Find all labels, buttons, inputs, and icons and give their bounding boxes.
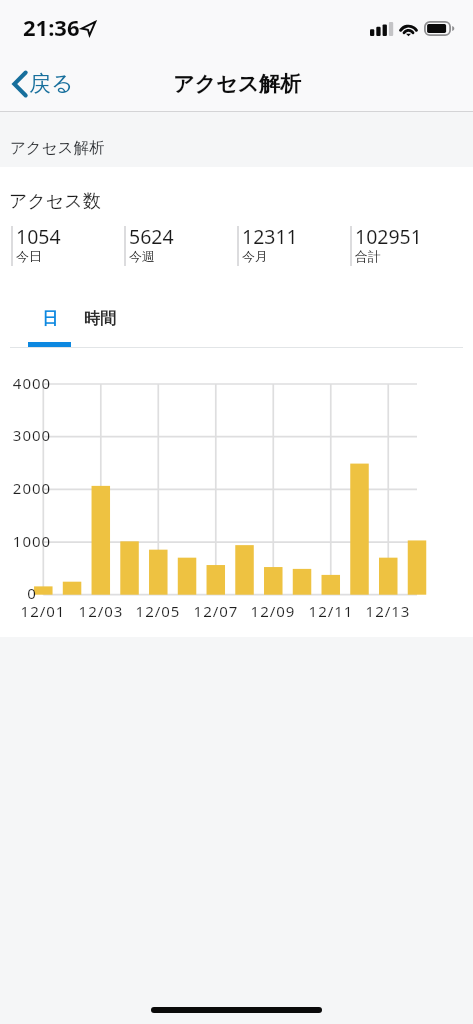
staticText: アクセス解析 <box>10 138 105 158</box>
staticText: 1054 <box>16 223 61 250</box>
staticText: 12311 <box>242 223 298 250</box>
staticText: 5624 <box>129 223 174 250</box>
staticText: 戻る <box>29 70 74 98</box>
staticText: 合計 <box>355 248 381 264</box>
staticText: 12/03 <box>71 601 131 621</box>
staticText: 今日 <box>16 248 42 264</box>
staticText: 今週 <box>129 248 155 264</box>
staticText: 2000 <box>2 478 62 498</box>
staticText: 12/11 <box>301 601 361 621</box>
button[interactable]: 日 <box>28 300 72 344</box>
staticText: 0 <box>2 583 62 603</box>
staticText: 今月 <box>242 248 268 264</box>
staticText: 12/07 <box>186 601 246 621</box>
staticText: 12/13 <box>358 601 418 621</box>
staticText: 12/01 <box>13 601 73 621</box>
staticText: 12/05 <box>128 601 188 621</box>
staticText: 4000 <box>2 373 62 393</box>
button[interactable]: 時間 <box>82 300 118 344</box>
staticText: 12/09 <box>243 601 303 621</box>
staticText: 1000 <box>2 531 62 551</box>
button[interactable]: 戻る <box>0 62 84 106</box>
staticText: 日 <box>42 309 58 329</box>
staticText: アクセス解析 <box>173 71 301 97</box>
staticText: 3000 <box>2 425 62 445</box>
staticText: 時間 <box>84 309 116 329</box>
staticText: アクセス数 <box>9 190 101 213</box>
staticText: 102951 <box>355 223 422 250</box>
staticText: 21:36 <box>23 12 80 42</box>
